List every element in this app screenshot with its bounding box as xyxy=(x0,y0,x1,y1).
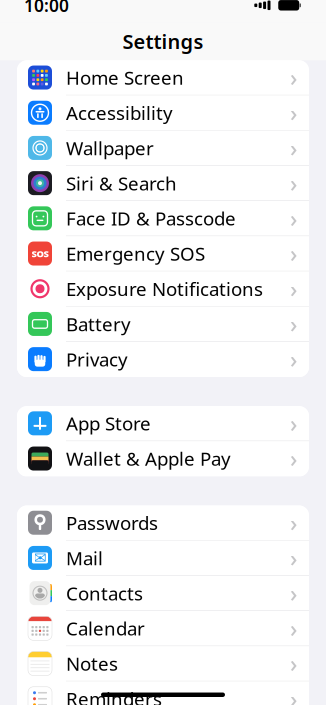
staticText: Privacy xyxy=(66,347,128,372)
staticText: › xyxy=(290,309,297,339)
staticText: › xyxy=(290,133,297,163)
staticText: Passwords xyxy=(66,510,158,535)
staticText: Home Screen xyxy=(66,65,184,90)
button[interactable]: Face ID & Passcode xyxy=(17,201,309,236)
button[interactable]: Contacts xyxy=(17,576,309,611)
staticText: Emergency SOS xyxy=(66,241,205,266)
staticText: › xyxy=(290,613,297,643)
button[interactable]: Exposure Notifications xyxy=(17,271,309,307)
staticText: › xyxy=(290,344,297,374)
staticText: › xyxy=(290,543,297,573)
button[interactable]: Calendar xyxy=(17,611,309,646)
button[interactable]: ✉ xyxy=(17,541,309,576)
button[interactable]: SOS xyxy=(17,236,309,271)
button[interactable]: App Store xyxy=(17,406,309,441)
staticText: Calendar xyxy=(66,616,145,641)
staticText: › xyxy=(290,408,297,438)
staticText: › xyxy=(290,98,297,128)
staticText: Face ID & Passcode xyxy=(66,206,236,231)
button[interactable]: Siri & Search xyxy=(17,166,309,201)
staticText: › xyxy=(290,578,297,608)
staticText: › xyxy=(290,443,297,474)
button[interactable]: Notes xyxy=(17,646,309,681)
staticText: App Store xyxy=(66,411,151,436)
staticText: Exposure Notifications xyxy=(66,276,263,301)
staticText: › xyxy=(290,648,297,679)
staticText: › xyxy=(290,508,297,538)
button[interactable]: Privacy xyxy=(17,342,309,377)
staticText: Wallet & Apple Pay xyxy=(66,446,231,471)
staticText: Notes xyxy=(66,651,118,676)
button[interactable]: Passwords xyxy=(17,505,309,541)
staticText: Reminders xyxy=(66,686,162,705)
staticText: Battery xyxy=(66,312,131,336)
staticText: › xyxy=(290,168,297,198)
staticText: › xyxy=(290,203,297,233)
staticText: Settings xyxy=(122,28,203,55)
button[interactable]: Accessibility xyxy=(17,95,309,131)
staticText: ✉ xyxy=(33,549,46,567)
button[interactable]: Wallet & Apple Pay xyxy=(17,441,309,476)
staticText: › xyxy=(290,274,297,304)
staticText: Siri & Search xyxy=(66,171,177,196)
staticText: › xyxy=(290,62,297,93)
staticText: Mail xyxy=(66,546,103,570)
button[interactable]: Reminders xyxy=(17,681,309,705)
button[interactable]: Wallpaper xyxy=(17,131,309,166)
staticText: SOS xyxy=(31,247,48,260)
staticText: Accessibility xyxy=(66,100,173,125)
button[interactable]: Battery xyxy=(17,307,309,342)
staticText: › xyxy=(290,238,297,269)
staticText: 10:00 xyxy=(24,0,69,17)
staticText: Wallpaper xyxy=(66,136,154,160)
staticText: Contacts xyxy=(66,581,143,606)
button[interactable]: Home Screen xyxy=(17,60,309,95)
staticText: › xyxy=(290,684,297,705)
